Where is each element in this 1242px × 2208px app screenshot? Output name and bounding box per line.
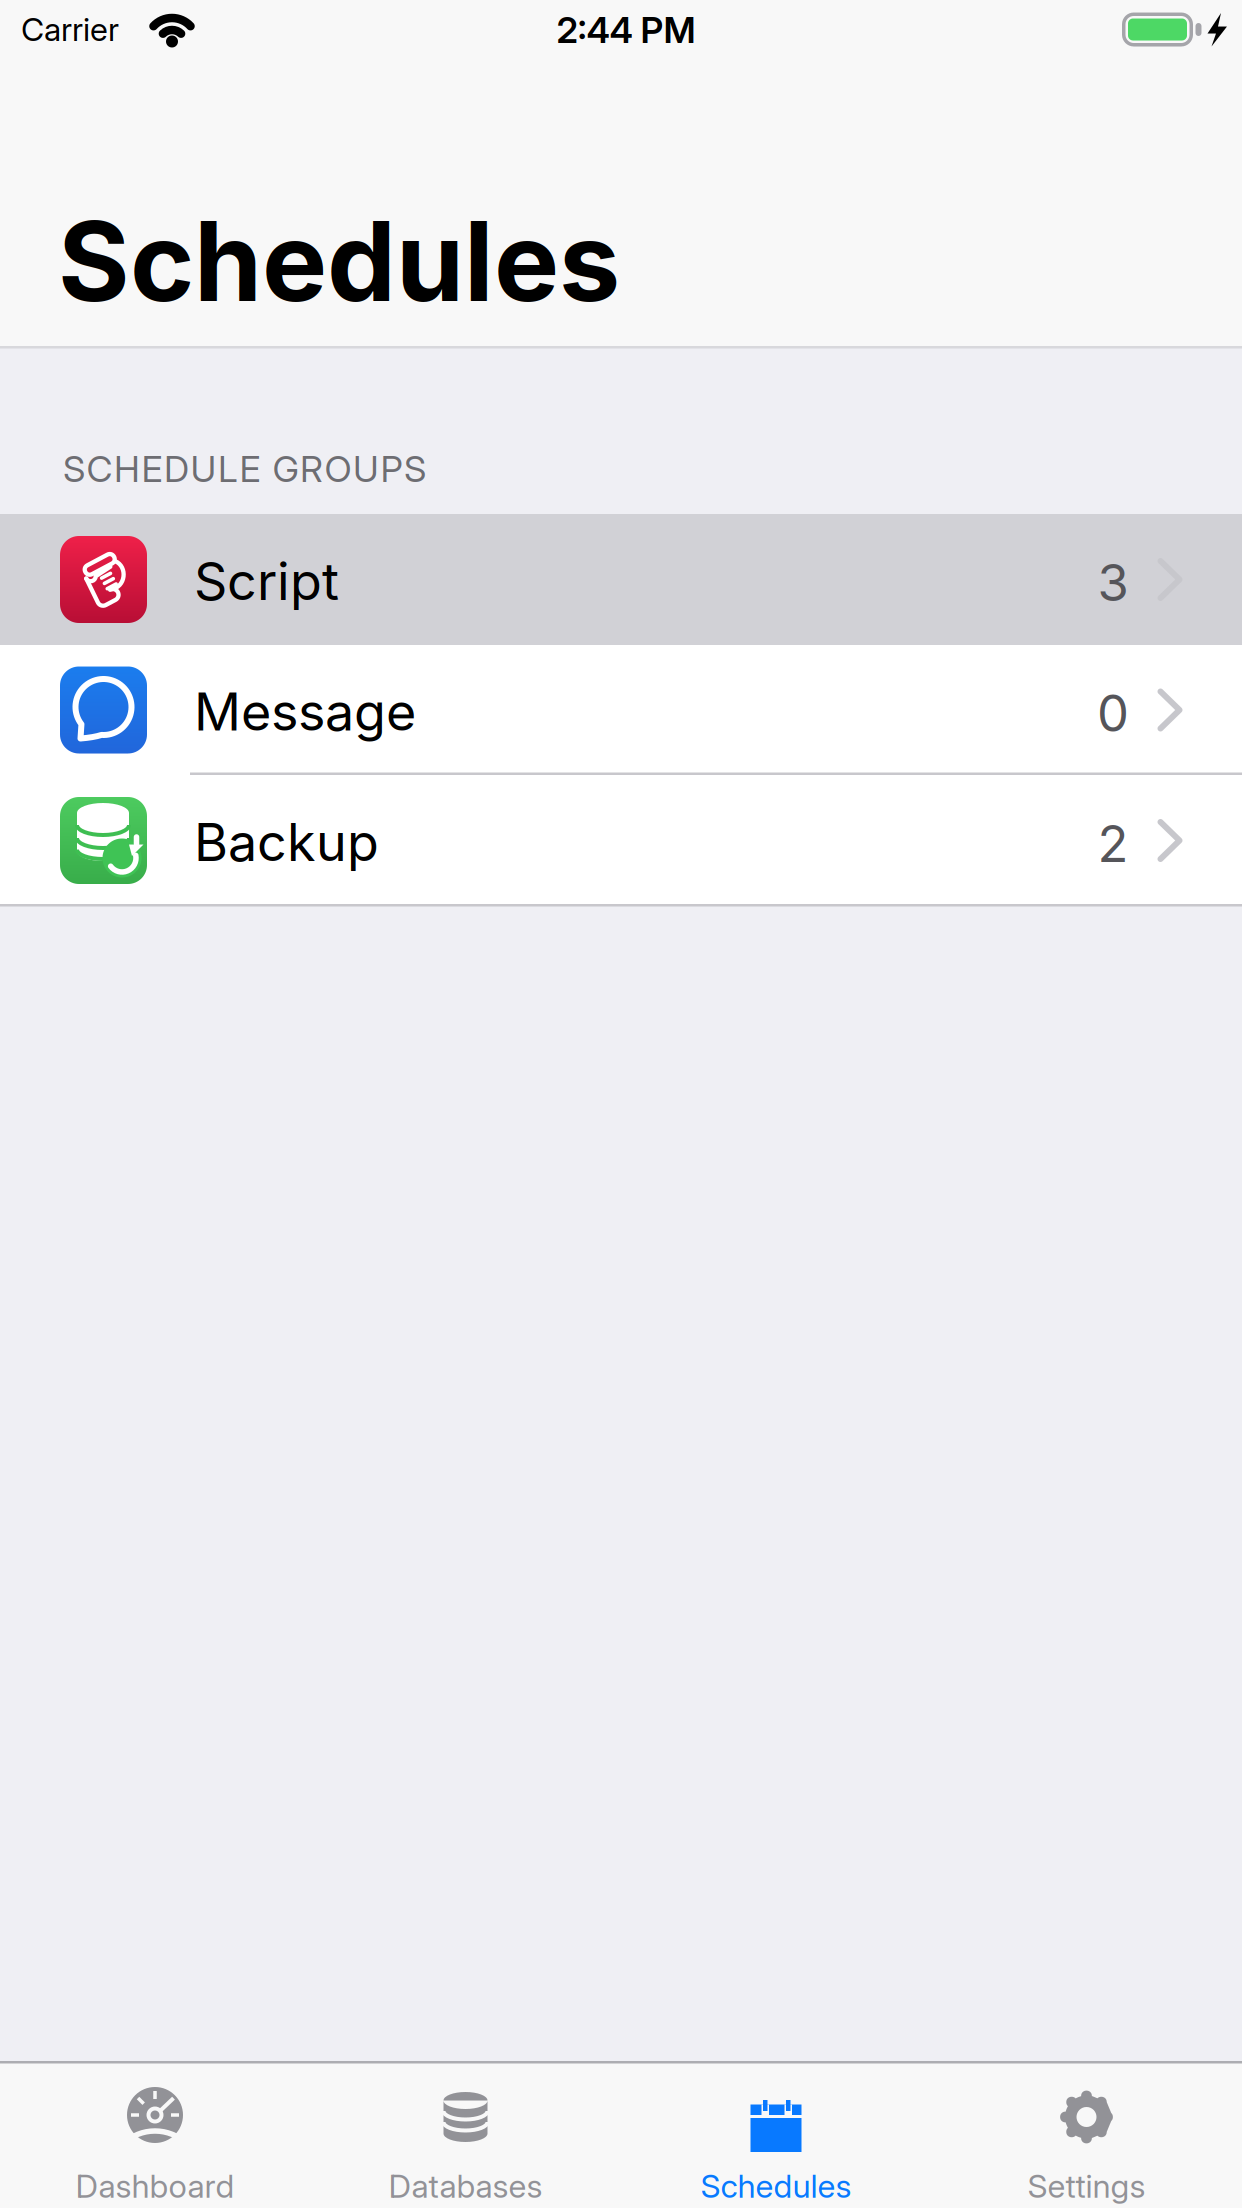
button[interactable]: Backup <box>0 775 1242 906</box>
button[interactable]: Script <box>0 514 1242 645</box>
staticText: Carrier <box>21 10 119 49</box>
staticText: 3 <box>1097 552 1128 613</box>
button[interactable]: Databases <box>310 2063 621 2208</box>
staticText: 2:44 PM <box>556 8 695 52</box>
staticText: Dashboard <box>75 2167 234 2205</box>
staticText: SCHEDULE GROUPS <box>63 447 426 491</box>
button[interactable]: Dashboard <box>0 2063 310 2208</box>
staticText: Backup <box>194 810 379 873</box>
staticText: Schedules <box>58 195 620 327</box>
staticText: Settings <box>1027 2167 1145 2205</box>
staticText: Message <box>194 680 416 743</box>
staticText: Script <box>194 549 339 612</box>
staticText: 2 <box>1097 813 1128 874</box>
staticText: Schedules <box>700 2167 851 2205</box>
staticText: Databases <box>388 2167 542 2205</box>
staticText: 0 <box>1097 682 1129 744</box>
button[interactable]: Message <box>0 645 1242 775</box>
button[interactable]: Schedules <box>621 2063 931 2208</box>
button[interactable]: Settings <box>931 2063 1242 2208</box>
